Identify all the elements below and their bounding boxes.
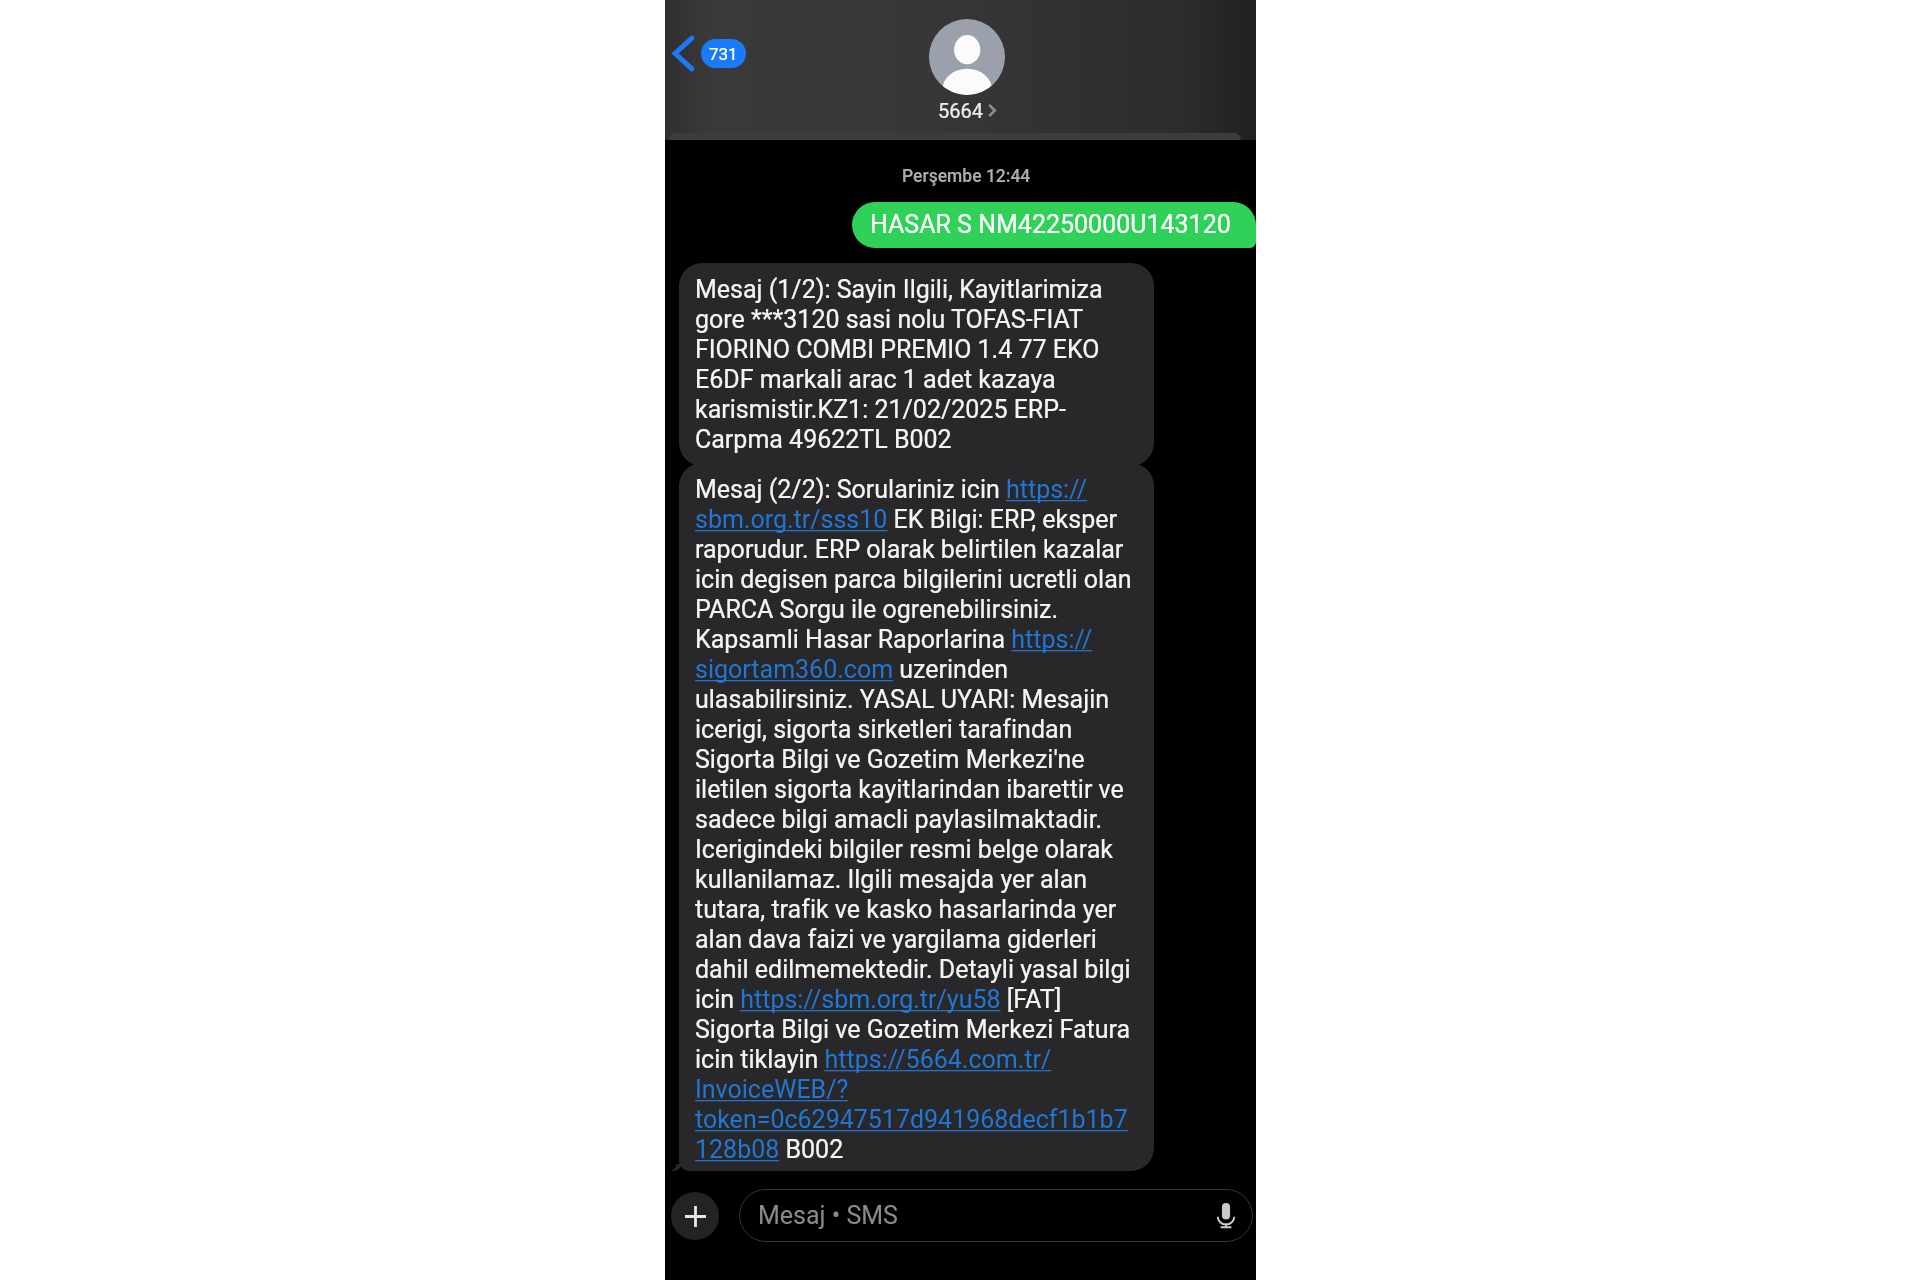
button[interactable]: Mesaj (2/2): Sorulariniz icin https://​s… [679,463,1154,1171]
staticText: HASAR S NM42250000U143120 [870,210,1231,239]
staticText: Perşembe 12:44 [902,166,1031,187]
button[interactable]: 5664 [929,19,1005,122]
button[interactable]: Back [668,31,751,76]
button[interactable]: HASAR S NM42250000U143120 [852,202,1256,248]
staticText: 731 [709,44,738,64]
button[interactable]: Mesaj • SMS [739,1189,1253,1242]
button[interactable]: Add attachment [671,1192,719,1240]
other: Back [673,36,694,71]
staticText: Mesaj (2/2): Sorulariniz icin https://​s… [695,475,1134,1165]
staticText: Mesaj (1/2): Sayin Ilgili, Kayitlarimiza… [695,275,1134,455]
other: Voice message [1217,1203,1235,1228]
button[interactable]: Mesaj (1/2): Sayin Ilgili, Kayitlarimiza… [679,263,1154,466]
staticText: Mesaj • SMS [758,1201,898,1230]
staticText: 5664 [938,99,983,122]
